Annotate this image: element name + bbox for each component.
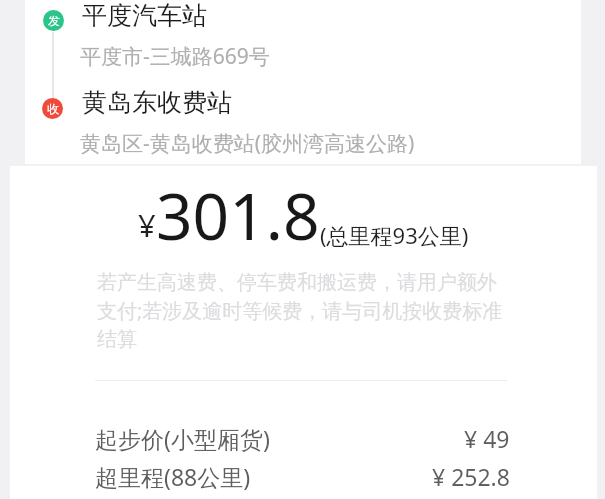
button[interactable]: 起步价(小型厢货) [95,423,510,454]
staticText: ¥ 49 [464,423,510,454]
staticText: 若产生高速费、停车费和搬运费，请用户额外支付;若涉及逾时等候费，请与司机按收费标… [97,270,512,352]
staticText: ¥ [138,204,156,246]
staticText: 平度汽车站 [82,0,207,31]
staticText: (总里程93公里) [320,220,469,250]
button[interactable]: 超里程(88公里) [95,461,510,492]
staticText: 301.8 [156,172,320,259]
staticText: 收 [47,101,59,116]
staticText: ¥ 252.8 [432,461,510,492]
staticText: 黄岛区-黄岛收费站(胶州湾高速公路) [80,129,415,158]
staticText: 超里程(88公里) [95,461,251,492]
button[interactable]: 发 [25,0,581,164]
staticText: 平度市-三城路669号 [80,42,270,71]
staticText: 发 [48,13,60,28]
button[interactable]: 发 [43,10,64,31]
button[interactable]: 收 [42,98,63,119]
staticText: 起步价(小型厢货) [95,423,270,454]
staticText: 黄岛东收费站 [82,87,232,118]
